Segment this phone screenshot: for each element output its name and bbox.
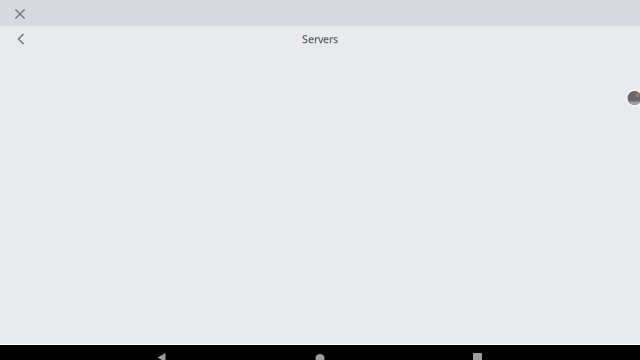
button[interactable]: Back (9, 27, 33, 51)
button[interactable]: Close (8, 0, 32, 26)
button[interactable]: Home (307, 351, 333, 360)
staticText: Servers (302, 32, 338, 46)
button[interactable]: Account (626, 89, 640, 106)
button[interactable]: Back (148, 350, 174, 360)
button[interactable]: Recent apps (464, 350, 490, 360)
